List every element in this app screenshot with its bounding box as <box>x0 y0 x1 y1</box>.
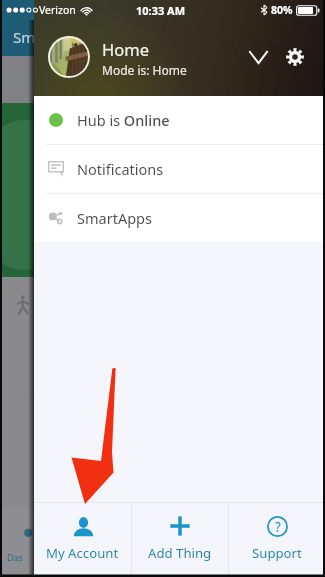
staticText: My Account <box>46 544 119 562</box>
button[interactable]: Add Thing <box>132 503 228 577</box>
button[interactable]: ? <box>229 503 325 577</box>
button[interactable]: Settings <box>277 39 313 75</box>
staticText: Home <box>102 38 149 60</box>
staticText: Support <box>252 544 302 562</box>
staticText: Sm <box>13 27 36 47</box>
staticText: SmartApps <box>77 208 152 228</box>
button[interactable]: Notifications <box>34 145 325 193</box>
button[interactable]: Expand locations <box>240 39 276 75</box>
button[interactable]: Profile photo <box>48 36 90 78</box>
staticText: Verizon <box>39 3 76 17</box>
staticText: Das <box>7 551 23 563</box>
staticText: Add Thing <box>148 544 212 562</box>
button[interactable]: SmartApps <box>34 194 325 242</box>
button[interactable]: My Account <box>34 503 131 577</box>
staticText: 80% <box>271 3 293 17</box>
staticText: Mode is: Home <box>102 62 187 78</box>
staticText: 10:33 AM <box>136 3 186 18</box>
staticText: ? <box>275 518 281 536</box>
staticText: Notifications <box>77 159 164 179</box>
staticText: Hub is Online <box>77 110 170 130</box>
button[interactable]: Hub is Online <box>34 96 325 144</box>
